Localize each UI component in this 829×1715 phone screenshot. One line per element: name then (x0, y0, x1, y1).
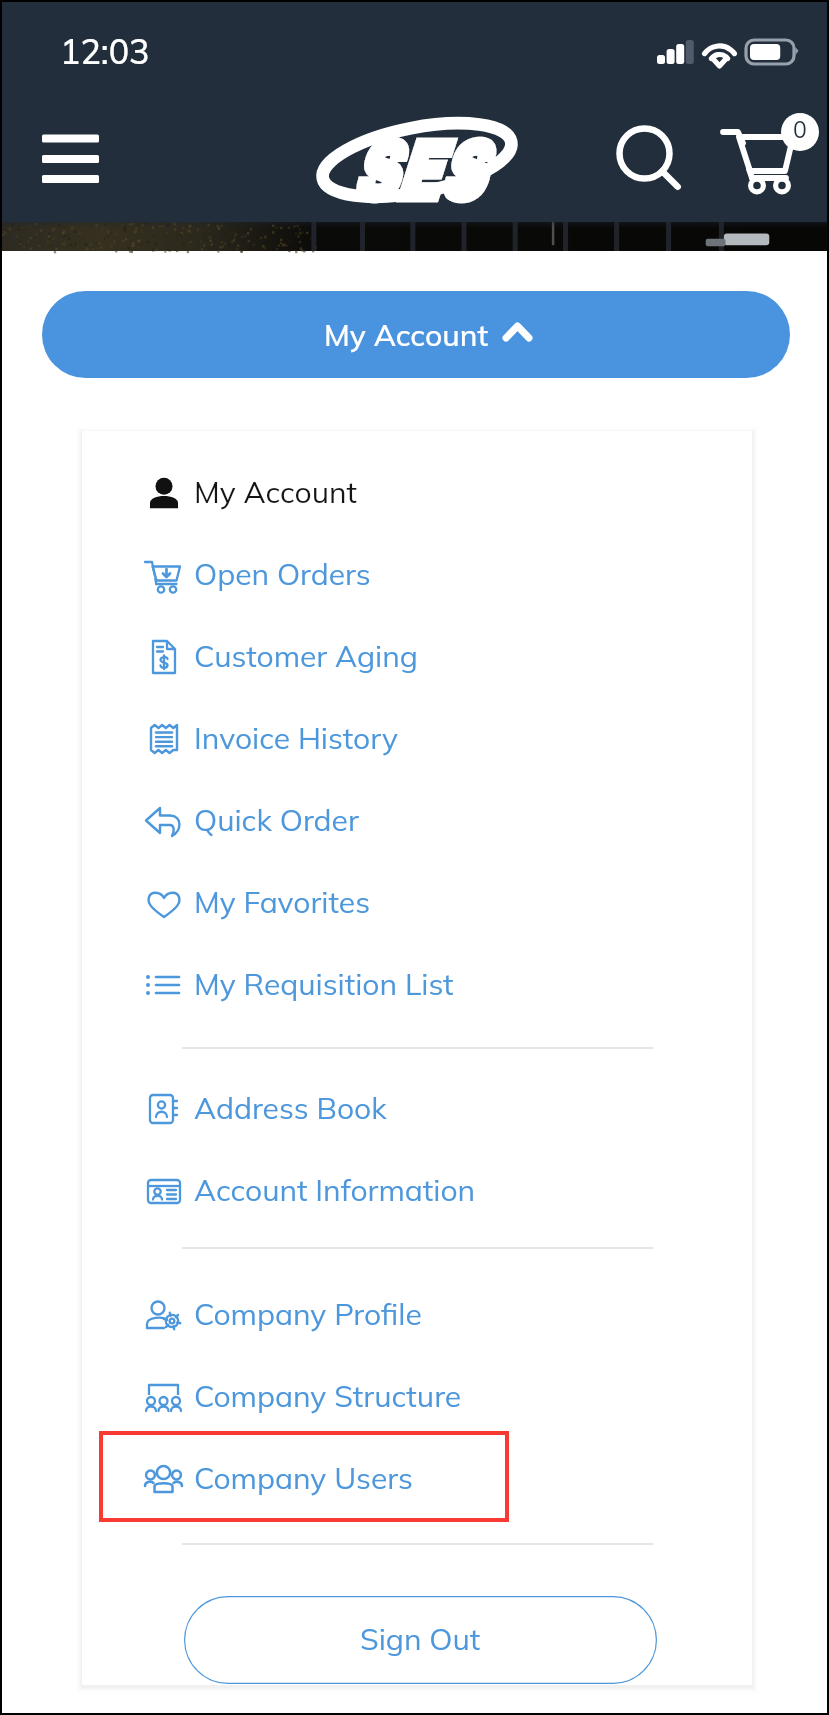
button[interactable]: My Account (42, 291, 790, 378)
staticText: Company Users (194, 1459, 413, 1497)
staticText: Company Structure (194, 1377, 462, 1415)
button[interactable]: Company Structure (82, 1360, 752, 1442)
button[interactable]: Invoice History (82, 702, 752, 784)
button[interactable]: My Requisition List (82, 948, 752, 1030)
staticText: My Requisition List (194, 965, 454, 1003)
staticText: 0 (793, 115, 807, 144)
staticText: Open Orders (194, 555, 371, 593)
button[interactable]: Customer Aging (82, 620, 752, 702)
button[interactable]: Open menu (22, 109, 118, 205)
button[interactable]: Open Orders (82, 538, 752, 620)
staticText: My Account (324, 316, 489, 354)
staticText: Address Book (194, 1089, 387, 1127)
staticText: Sign Out (360, 1620, 481, 1658)
staticText: Quick Order (194, 801, 359, 839)
button[interactable]: Address Book (82, 1072, 752, 1154)
staticText: Invoice History (194, 719, 398, 757)
button[interactable]: Search (604, 113, 700, 209)
button[interactable]: Sign Out (184, 1596, 657, 1684)
button[interactable]: Shopping cart, 0 items (708, 107, 818, 207)
button[interactable]: Company Users (82, 1442, 752, 1524)
button[interactable]: Company Profile (82, 1278, 752, 1360)
staticText: SES (350, 127, 481, 219)
staticText: My Account (194, 473, 358, 511)
staticText: My Favorites (194, 883, 371, 921)
staticText: Customer Aging (194, 637, 418, 675)
staticText: Account Information (194, 1171, 476, 1209)
staticText: 12:03 (60, 30, 150, 73)
button[interactable]: Account Information (82, 1154, 752, 1236)
button[interactable]: My Favorites (82, 866, 752, 948)
button[interactable]: Quick Order (82, 784, 752, 866)
button[interactable]: My Account (82, 456, 752, 538)
staticText: Company Profile (194, 1295, 422, 1333)
